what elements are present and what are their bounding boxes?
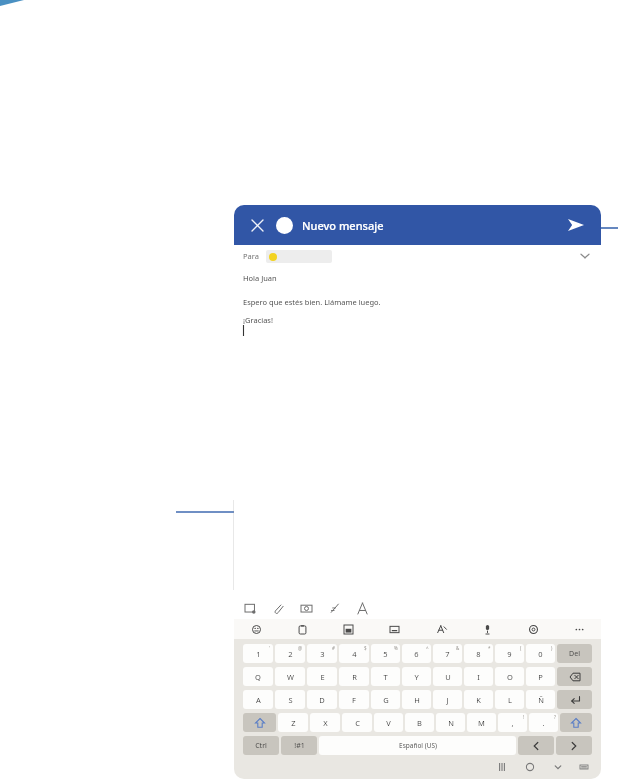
staticText: Y [414,672,419,682]
staticText: R [352,672,357,682]
button[interactable]: G [371,690,400,709]
staticText: 0 [538,649,543,659]
staticText: 8 [476,649,481,659]
button[interactable]: Portapapeles [294,621,310,637]
button[interactable]: Teclado flotante [386,621,402,637]
button[interactable]: I [464,667,493,686]
button[interactable]: Ajustes [525,621,541,637]
button[interactable]: L [495,690,524,709]
button[interactable]: P [526,667,555,686]
button[interactable]: Mayúsculas [560,713,592,732]
button[interactable]: Escritura a mano [325,599,343,617]
button[interactable]: Siguiente [556,736,592,755]
button[interactable]: Ñ [526,690,555,709]
button[interactable]: A [243,690,273,709]
staticText: E [320,672,325,682]
staticText: ) [551,645,553,651]
button[interactable]: E [307,667,337,686]
button[interactable]: Voz [479,621,495,637]
button[interactable]: O [495,667,524,686]
button[interactable]: Anterior [518,736,554,755]
staticText: G [383,695,389,705]
button[interactable]: 2 [275,644,305,663]
staticText: F [352,695,356,705]
button[interactable]: . [529,713,558,732]
staticText: 5 [383,649,388,659]
button[interactable]: Modo [340,621,356,637]
staticText: Del [569,649,580,659]
staticText: U [445,672,451,682]
staticText: B [417,718,422,728]
button[interactable]: V [374,713,403,732]
button[interactable]: , [498,713,527,732]
button[interactable]: X [310,713,340,732]
button[interactable]: Más [571,621,587,637]
button[interactable]: Q [243,667,273,686]
button[interactable]: J [433,690,462,709]
button[interactable]: Mayúsculas [243,713,276,732]
button[interactable]: U [433,667,462,686]
button[interactable]: Español (US) [319,736,516,755]
staticText: ^ [426,645,429,651]
staticText: ( [520,645,522,651]
button[interactable]: 9 [495,644,524,663]
button[interactable]: R [339,667,369,686]
staticText: S [288,695,293,705]
button[interactable]: K [464,690,493,709]
staticText: C [355,718,360,728]
button[interactable]: 7 [433,644,462,663]
button[interactable]: N [436,713,465,732]
button[interactable]: Enviar [563,212,589,238]
button[interactable]: Recientes [495,760,509,774]
button[interactable]: 3 [307,644,337,663]
button[interactable]: Insertar [241,599,259,617]
staticText: P [538,672,543,682]
button[interactable] [266,250,332,263]
button[interactable]: Expandir [577,248,593,264]
button[interactable]: Emoji [248,621,264,637]
button[interactable]: Inicio [523,760,537,774]
staticText: ' [269,645,271,651]
button[interactable]: Formato de texto [353,599,371,617]
button[interactable]: F [339,690,369,709]
button[interactable]: 8 [464,644,493,663]
staticText: $ [364,645,367,651]
staticText: . [542,718,545,728]
staticText: 1 [256,649,261,659]
button[interactable]: B [405,713,434,732]
button[interactable]: S [275,690,305,709]
staticText: ? [554,714,556,720]
button[interactable]: Cámara [297,599,315,617]
button[interactable]: C [342,713,372,732]
button[interactable]: 5 [371,644,400,663]
staticText: M [478,718,485,728]
staticText: ¡Gracias! [243,315,273,325]
button[interactable]: Ocultar teclado [551,760,565,774]
button[interactable]: Traducir [433,621,449,637]
staticText: % [394,645,398,651]
button[interactable]: D [307,690,337,709]
button[interactable]: Intro [557,690,592,709]
button[interactable]: Z [278,713,308,732]
button[interactable]: 6 [402,644,431,663]
button[interactable]: 1 [243,644,273,663]
button[interactable]: Teclado [577,760,591,774]
staticText: Espero que estés bien. Llámame luego. [243,297,381,307]
button[interactable]: M [467,713,496,732]
button[interactable]: !#1 [281,736,317,755]
button[interactable]: Del [557,644,592,663]
staticText: O [507,672,513,682]
button[interactable]: Adjuntar [269,599,287,617]
button[interactable]: Y [402,667,431,686]
button[interactable]: T [371,667,400,686]
staticText: Para [243,251,259,261]
button[interactable]: 4 [339,644,369,663]
button[interactable]: Retroceso [557,667,592,686]
staticText: H [414,695,420,705]
staticText: L [508,695,512,705]
button[interactable]: Cerrar [246,214,268,236]
button[interactable]: H [402,690,431,709]
button[interactable]: W [275,667,305,686]
button[interactable]: Ctrl [243,736,279,755]
button[interactable]: 0 [526,644,555,663]
